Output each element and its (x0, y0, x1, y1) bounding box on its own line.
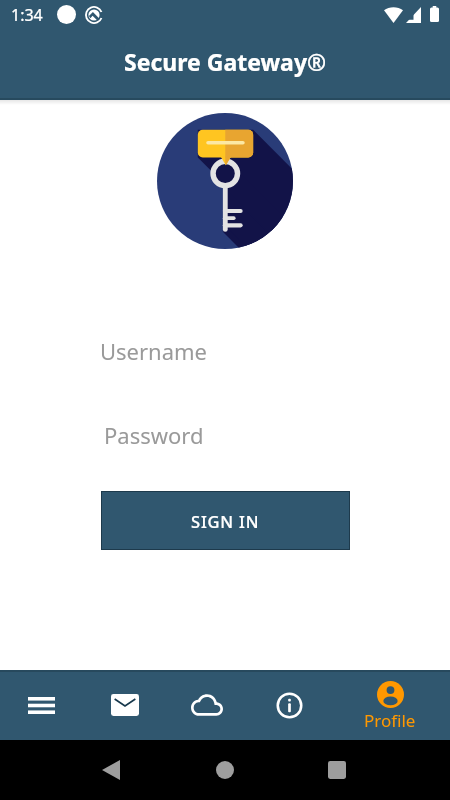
button[interactable]: Back (102, 760, 120, 780)
button[interactable]: Mail (83, 670, 166, 740)
button[interactable]: Username (100, 331, 350, 371)
staticText: SIGN IN (191, 510, 260, 532)
button[interactable]: Cloud (166, 670, 248, 740)
button[interactable]: Home (216, 761, 234, 779)
staticText: Password (104, 420, 204, 450)
button[interactable]: Menu (0, 670, 83, 740)
staticText: Username (100, 336, 208, 366)
staticText: 1:34 (11, 4, 43, 26)
button[interactable]: Recent apps (328, 761, 346, 779)
button[interactable]: SIGN IN (102, 492, 349, 549)
button[interactable]: Info (248, 670, 330, 740)
button[interactable]: Password (104, 415, 350, 455)
staticText: Secure Gateway® (124, 46, 327, 77)
staticText: Profile (364, 709, 416, 732)
button[interactable]: Profile (340, 670, 440, 740)
